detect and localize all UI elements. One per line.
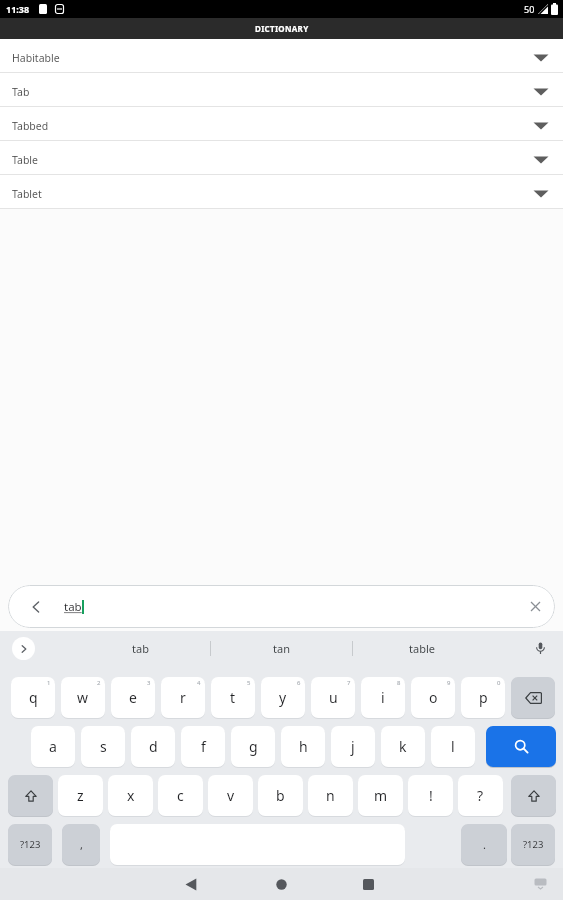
button[interactable]: v <box>208 775 253 816</box>
button[interactable]: l <box>431 726 475 767</box>
staticText: 0 <box>497 679 501 687</box>
button[interactable] <box>8 775 53 816</box>
staticText: j <box>351 737 355 756</box>
button[interactable]: k <box>381 726 425 767</box>
button[interactable]: p <box>461 677 505 718</box>
staticText: m <box>374 786 388 805</box>
button[interactable] <box>486 726 556 767</box>
staticText: DICTIONARY <box>255 23 309 34</box>
button[interactable]: . <box>461 824 507 865</box>
staticText: 6 <box>297 679 301 687</box>
button[interactable]: Habitable <box>0 39 563 73</box>
button[interactable]: Tabbed <box>0 107 563 141</box>
button[interactable]: ? <box>458 775 503 816</box>
button[interactable]: n <box>308 775 353 816</box>
staticText: 5 <box>247 679 251 687</box>
staticText: 9 <box>447 679 451 687</box>
button[interactable]: s <box>81 726 125 767</box>
button[interactable]: e <box>111 677 155 718</box>
button[interactable]: t <box>211 677 255 718</box>
button[interactable]: z <box>58 775 103 816</box>
button[interactable] <box>354 870 382 898</box>
button[interactable]: h <box>281 726 325 767</box>
button[interactable]: a <box>31 726 75 767</box>
button[interactable]: tab <box>8 585 555 628</box>
staticText: n <box>326 786 335 805</box>
button[interactable] <box>511 677 555 718</box>
button[interactable]: x <box>108 775 153 816</box>
staticText: 50 <box>524 3 535 15</box>
button[interactable]: j <box>331 726 375 767</box>
staticText: v <box>227 786 235 805</box>
staticText: ?123 <box>523 838 544 851</box>
staticText: x <box>127 786 135 805</box>
staticText: o <box>429 688 438 707</box>
staticText: t <box>230 688 236 707</box>
button[interactable] <box>12 637 35 660</box>
staticText: w <box>77 688 89 707</box>
button[interactable]: ?123 <box>8 824 52 865</box>
button[interactable]: ?123 <box>511 824 555 865</box>
button[interactable]: table <box>353 631 490 666</box>
staticText: l <box>451 737 455 756</box>
staticText: s <box>100 737 107 756</box>
staticText: 4 <box>197 679 201 687</box>
staticText: p <box>479 688 488 707</box>
button[interactable] <box>30 601 42 613</box>
staticText: 11:38 <box>6 3 30 15</box>
staticText: Tabbed <box>12 119 49 133</box>
staticText: Tablet <box>12 187 42 201</box>
staticText: 8 <box>397 679 401 687</box>
staticText: 1 <box>47 679 51 687</box>
staticText: tab <box>64 599 82 615</box>
button[interactable]: , <box>62 824 100 865</box>
staticText: tab <box>132 641 149 656</box>
button[interactable]: m <box>358 775 403 816</box>
staticText: ?123 <box>20 838 41 851</box>
button[interactable]: r <box>161 677 205 718</box>
staticText: k <box>399 737 407 756</box>
button[interactable] <box>527 870 553 896</box>
button[interactable]: o <box>411 677 455 718</box>
staticText: q <box>29 688 38 707</box>
staticText: d <box>149 737 158 756</box>
button[interactable]: d <box>131 726 175 767</box>
button[interactable]: ! <box>408 775 453 816</box>
button[interactable] <box>528 636 553 661</box>
button[interactable]: Tablet <box>0 175 563 209</box>
staticText: z <box>77 786 84 805</box>
button[interactable]: Table <box>0 141 563 175</box>
staticText: Tab <box>12 85 30 99</box>
staticText: h <box>299 737 308 756</box>
button[interactable]: g <box>231 726 275 767</box>
staticText: 2 <box>97 679 101 687</box>
button[interactable]: w <box>61 677 105 718</box>
staticText: b <box>276 786 285 805</box>
button[interactable] <box>177 870 205 898</box>
staticText: . <box>483 837 486 852</box>
staticText: g <box>249 737 258 756</box>
staticText: Table <box>12 153 38 167</box>
button[interactable]: tab <box>70 631 210 666</box>
button[interactable]: u <box>311 677 355 718</box>
button[interactable]: i <box>361 677 405 718</box>
button[interactable]: tan <box>211 631 352 666</box>
button[interactable] <box>511 775 556 816</box>
staticText: r <box>180 688 186 707</box>
staticText: c <box>177 786 184 805</box>
staticText: i <box>381 688 385 707</box>
button[interactable]: f <box>181 726 225 767</box>
staticText: a <box>49 737 57 756</box>
button[interactable]: q <box>11 677 55 718</box>
button[interactable] <box>530 601 541 612</box>
button[interactable]: b <box>258 775 303 816</box>
button[interactable]: y <box>261 677 305 718</box>
button[interactable]: c <box>158 775 203 816</box>
staticText: Habitable <box>12 51 60 65</box>
button[interactable]: Tab <box>0 73 563 107</box>
button[interactable] <box>267 870 295 898</box>
staticText: ! <box>429 786 433 805</box>
staticText: 7 <box>347 679 351 687</box>
staticText: ? <box>477 786 484 805</box>
